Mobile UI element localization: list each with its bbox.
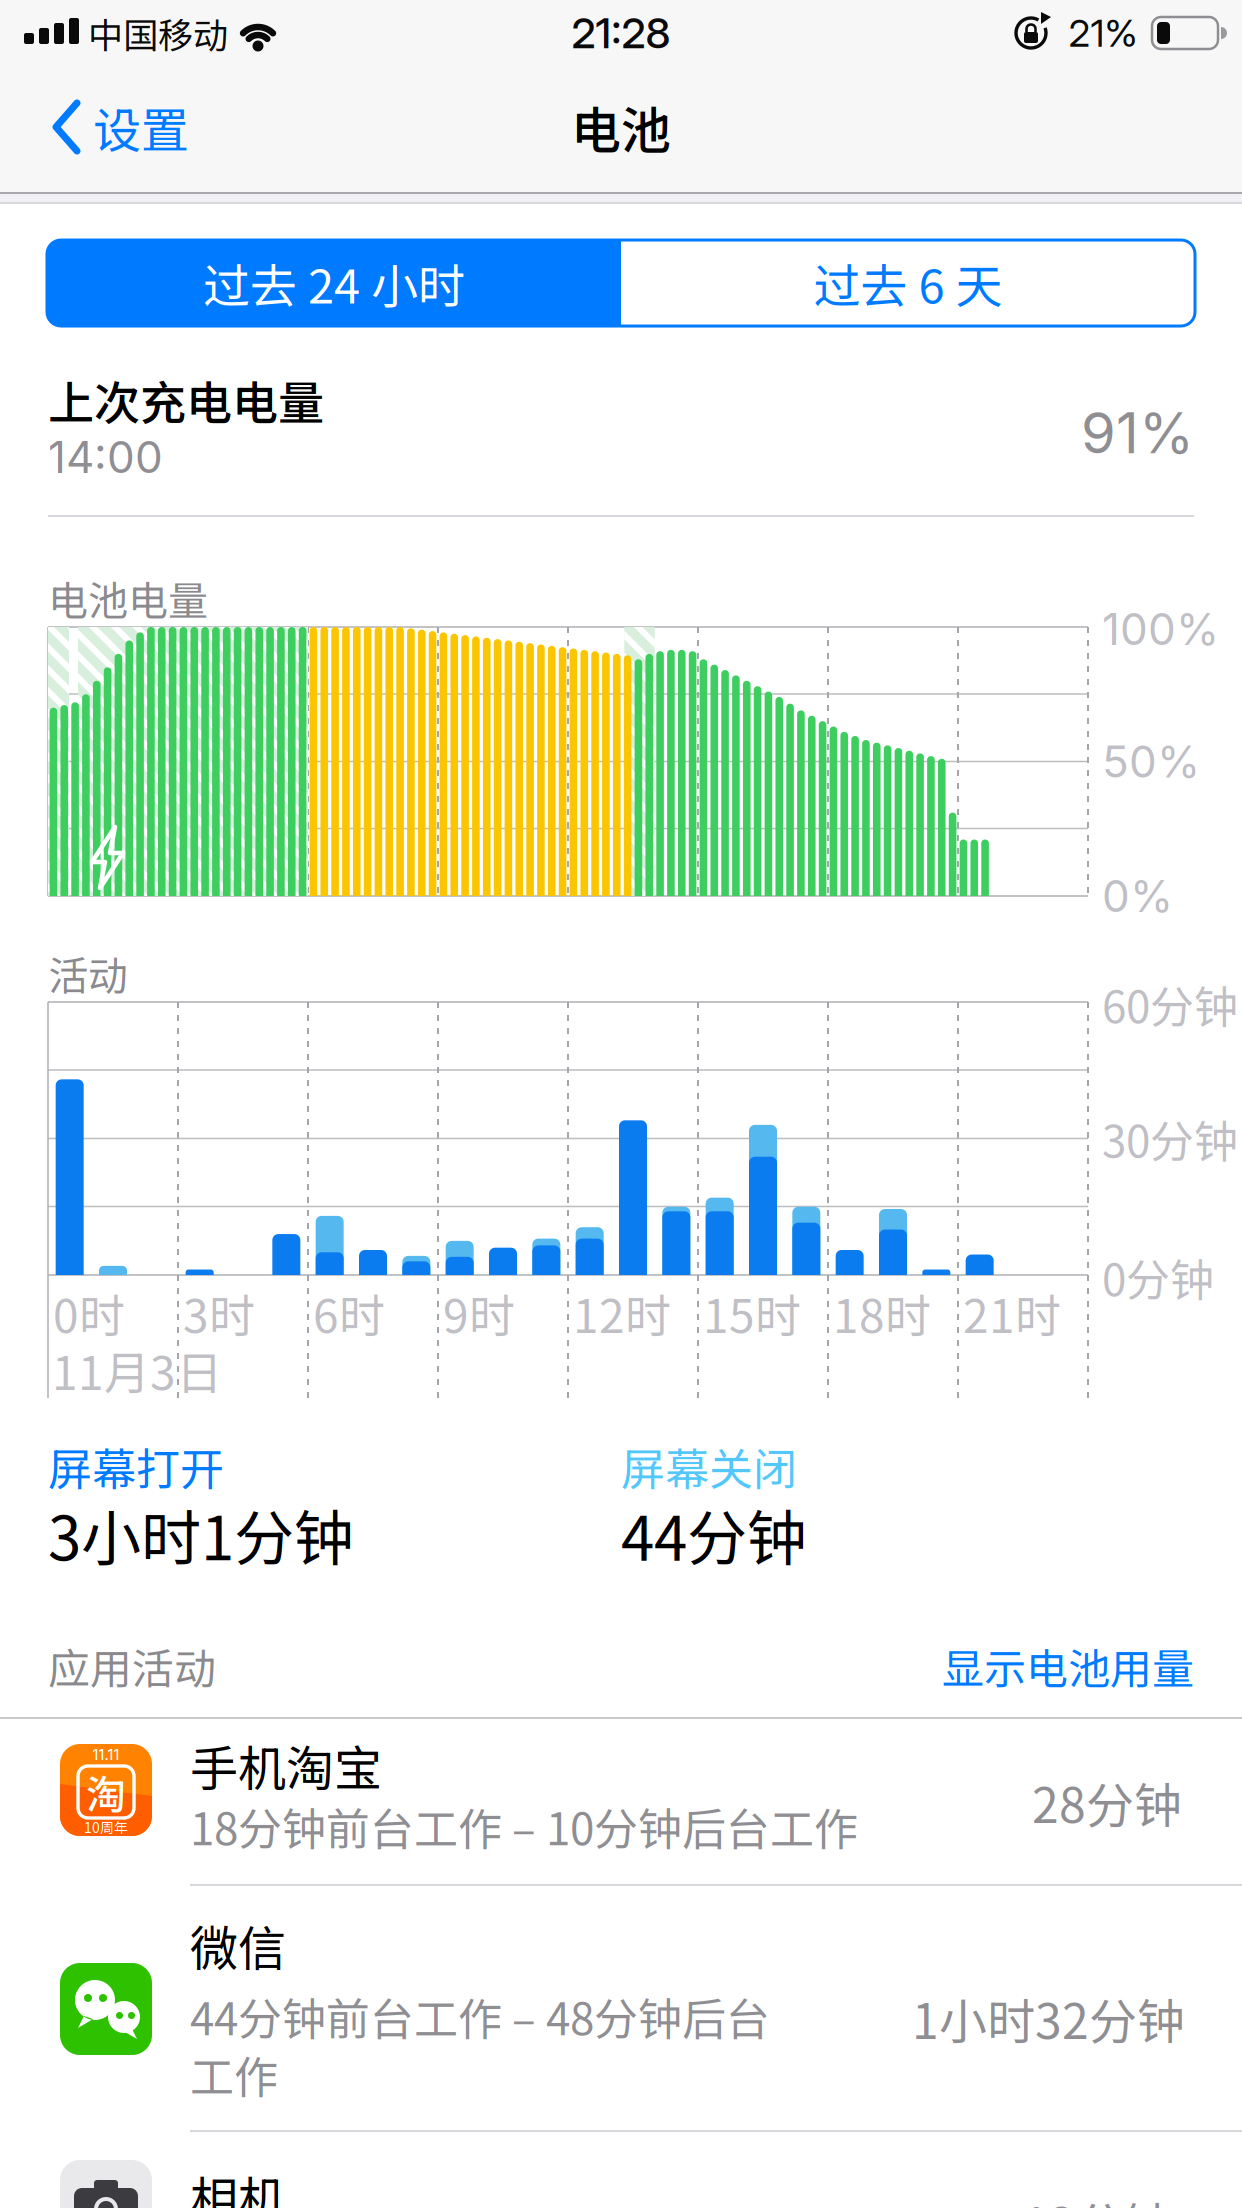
staticText: 12分钟 <box>1022 2187 1172 2208</box>
staticText: 91% <box>1081 399 1194 467</box>
staticText: 18时 <box>833 1280 931 1346</box>
staticText: 屏幕打开 <box>48 1434 224 1498</box>
staticText: 0时 <box>53 1280 125 1346</box>
staticText: 21时 <box>963 1280 1061 1346</box>
staticText: 相机 <box>190 2161 286 2208</box>
staticText: 0分钟 <box>1102 1245 1214 1309</box>
staticText: 100% <box>1102 602 1219 656</box>
button[interactable]: 淘 <box>0 1718 1242 1884</box>
staticText: 电池 <box>571 91 671 163</box>
staticText: 设置 <box>93 92 189 162</box>
staticText: 3小时1分钟 <box>48 1491 354 1577</box>
button[interactable]: 过去 6 天 <box>621 240 1195 326</box>
staticText: 微信 <box>190 1910 286 1980</box>
staticText: 44分钟 <box>621 1491 807 1577</box>
staticText: 21:28 <box>571 8 670 58</box>
staticText: 应用活动 <box>48 1636 216 1696</box>
staticText: 12时 <box>573 1280 671 1346</box>
staticText: 44分钟前台工作 – 48分钟后台 <box>190 1984 770 2048</box>
staticText: 过去 6 天 <box>813 249 1002 317</box>
staticText: 28分钟 <box>1032 1767 1182 1837</box>
staticText: 电池电量 <box>48 569 208 627</box>
staticText: 0% <box>1102 869 1173 923</box>
staticText: 21% <box>1068 10 1137 56</box>
staticText: 屏幕关闭 <box>621 1434 797 1498</box>
staticText: 11.11 <box>92 1746 119 1763</box>
staticText: 上次充电电量 <box>48 367 324 433</box>
staticText: 3时 <box>183 1280 255 1346</box>
staticText: 中国移动 <box>88 8 228 58</box>
button[interactable]: 过去 24 小时 <box>47 240 621 326</box>
staticText: 过去 24 小时 <box>203 249 465 317</box>
staticText: 活动 <box>48 944 128 1002</box>
staticText: 9时 <box>443 1280 515 1346</box>
button[interactable]: 相机 <box>0 2131 1242 2208</box>
button[interactable]: 返回设置 <box>51 92 189 162</box>
staticText: 60分钟 <box>1102 972 1238 1036</box>
staticText: 11月3日 <box>52 1337 222 1403</box>
staticText: 18分钟前台工作 – 10分钟后台工作 <box>190 1794 858 1858</box>
staticText: 30分钟 <box>1102 1107 1238 1170</box>
staticText: 14:00 <box>48 430 163 484</box>
button[interactable]: 微信 <box>0 1885 1242 2131</box>
staticText: 6时 <box>313 1280 385 1346</box>
staticText: 10周年 <box>84 1817 128 1837</box>
button[interactable]: 显示电池用量 <box>794 1636 1194 1696</box>
staticText: 显示电池用量 <box>942 1636 1194 1696</box>
staticText: 淘 <box>86 1763 126 1821</box>
staticText: 手机淘宝 <box>190 1730 382 1800</box>
staticText: 工作 <box>190 2042 278 2106</box>
staticText: 1小时32分钟 <box>912 1983 1185 2053</box>
staticText: 15时 <box>703 1280 801 1346</box>
staticText: 50% <box>1102 735 1200 788</box>
